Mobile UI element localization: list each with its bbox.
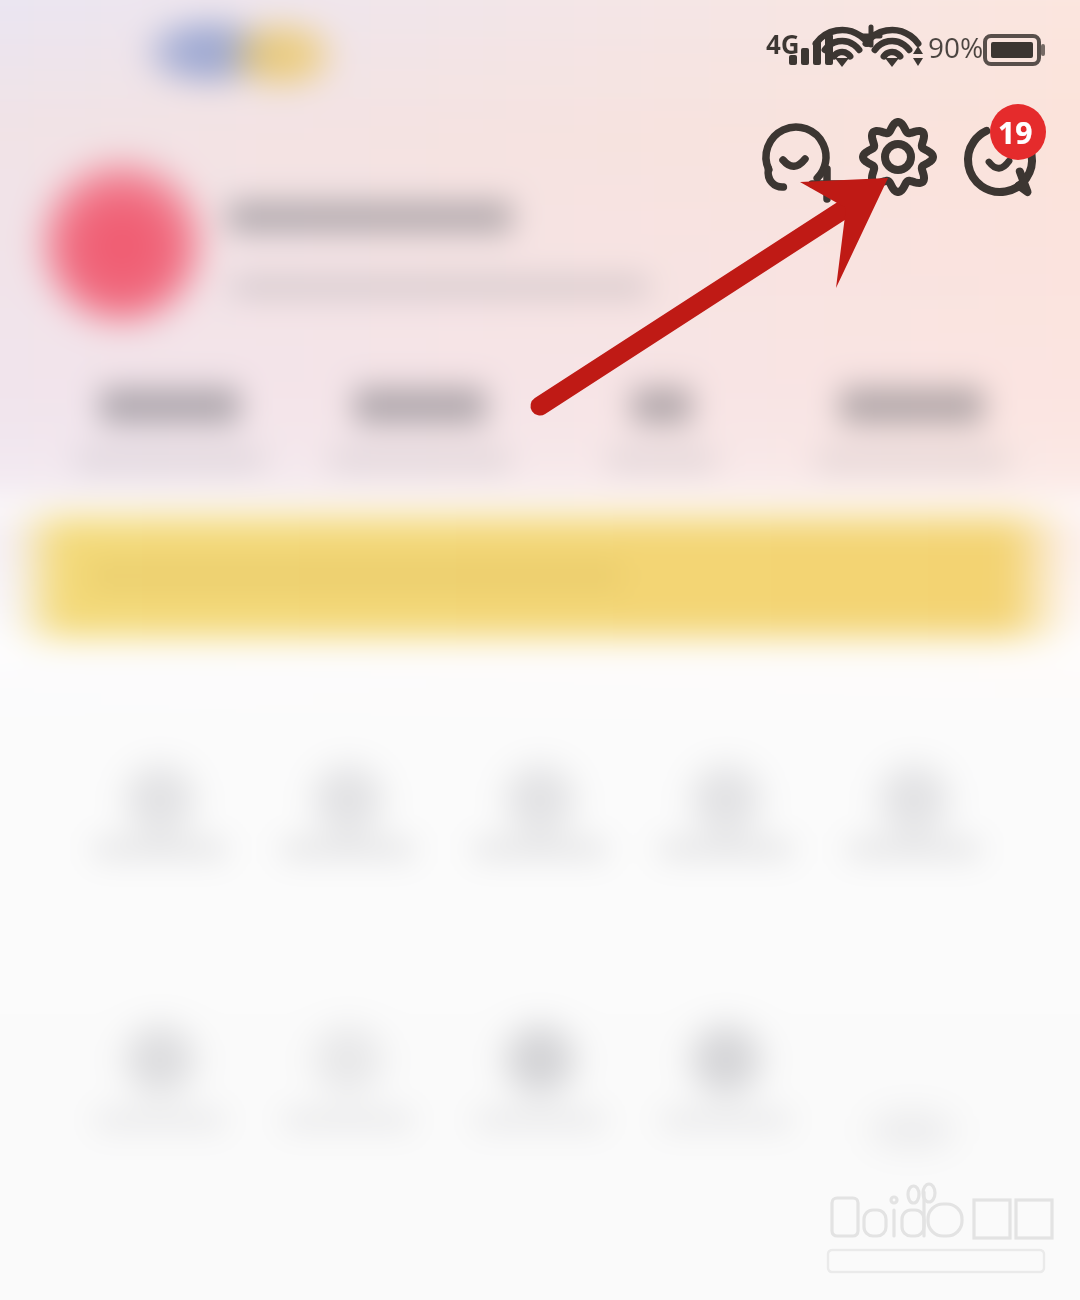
staticText: 90% <box>928 28 984 66</box>
button[interactable]: Messages, 19 unread <box>956 110 1048 202</box>
staticText: 19 <box>998 112 1033 153</box>
button[interactable]: Add friend <box>752 113 840 201</box>
staticText: 4G <box>766 26 800 61</box>
button[interactable]: Settings <box>854 113 942 201</box>
